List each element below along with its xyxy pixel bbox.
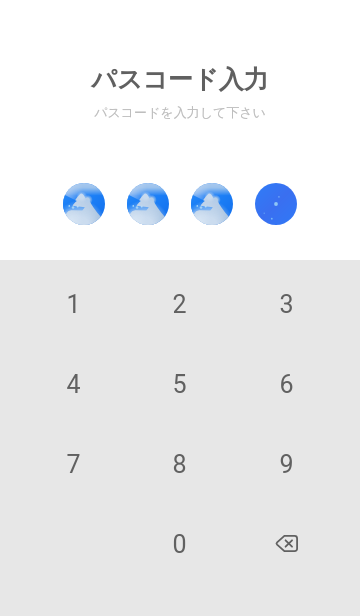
- staticText: 4: [66, 370, 81, 399]
- button[interactable]: 8: [126, 424, 233, 504]
- button[interactable]: Backspace: [233, 504, 340, 584]
- staticText: 2: [172, 290, 187, 319]
- staticText: 1: [66, 290, 81, 319]
- staticText: パスコード入力: [91, 64, 269, 95]
- button[interactable]: 6: [233, 344, 340, 424]
- staticText: 7: [66, 450, 81, 479]
- staticText: 0: [172, 530, 187, 559]
- staticText: 5: [172, 370, 187, 399]
- button[interactable]: 0: [126, 504, 233, 584]
- staticText: パスコードを入力して下さい: [94, 104, 266, 120]
- staticText: 9: [279, 450, 294, 479]
- button[interactable]: 4: [20, 344, 126, 424]
- staticText: 6: [279, 370, 294, 399]
- staticText: 8: [172, 450, 187, 479]
- button[interactable]: 5: [126, 344, 233, 424]
- button[interactable]: 9: [233, 424, 340, 504]
- button[interactable]: 7: [20, 424, 126, 504]
- button[interactable]: 2: [126, 264, 233, 344]
- button[interactable]: 3: [233, 264, 340, 344]
- staticText: 3: [279, 290, 294, 319]
- button[interactable]: 1: [20, 264, 126, 344]
